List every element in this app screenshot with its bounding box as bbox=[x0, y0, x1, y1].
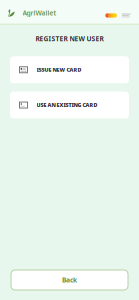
staticText: Back bbox=[62, 276, 77, 284]
staticText: ISSUE NEW CARD bbox=[36, 66, 81, 73]
button[interactable]: USE AN EXISTING CARD bbox=[10, 92, 129, 119]
staticText: USE AN EXISTING CARD bbox=[36, 101, 97, 109]
staticText: AgriWallet bbox=[22, 8, 56, 17]
button[interactable]: Back bbox=[11, 270, 128, 290]
button[interactable]: ISSUE NEW CARD bbox=[10, 56, 129, 83]
staticText: REGISTER NEW USER bbox=[35, 34, 103, 43]
